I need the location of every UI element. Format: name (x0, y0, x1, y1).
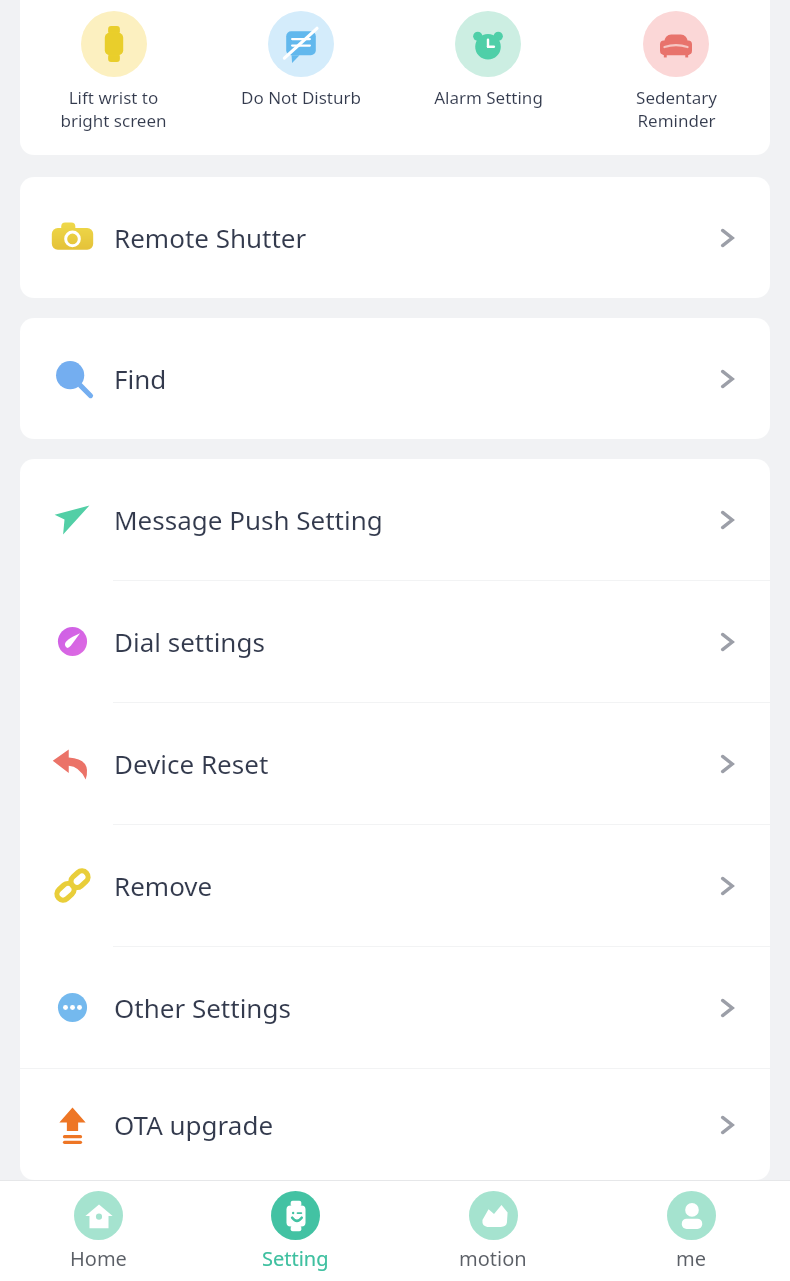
button[interactable]: Other Settings (20, 947, 770, 1068)
button[interactable]: motion (394, 1181, 592, 1281)
button[interactable]: OTA upgrade (20, 1069, 770, 1180)
button[interactable]: Find (20, 318, 770, 439)
staticText: Device Reset (114, 746, 269, 781)
staticText: Dial settings (114, 624, 265, 659)
button[interactable]: Device Reset (20, 703, 770, 824)
button[interactable]: me (592, 1181, 790, 1281)
staticText: OTA upgrade (114, 1107, 274, 1142)
staticText: Lift wrist to bright screen (60, 86, 167, 132)
staticText: me (676, 1245, 706, 1272)
staticText: Other Settings (114, 990, 291, 1025)
button[interactable]: Remote Shutter (20, 177, 770, 298)
staticText: Remote Shutter (114, 220, 307, 255)
button[interactable]: Setting (197, 1181, 394, 1281)
staticText: Message Push Setting (114, 502, 383, 537)
staticText: Remove (114, 868, 213, 903)
button[interactable]: Dial settings (20, 581, 770, 702)
button[interactable]: Alarm Setting (394, 0, 582, 155)
button[interactable]: Remove (20, 825, 770, 946)
staticText: Setting (262, 1245, 329, 1272)
staticText: Sedentary Reminder (636, 86, 717, 132)
button[interactable]: Message Push Setting (20, 459, 770, 580)
staticText: Do Not Disturb (241, 86, 361, 109)
button[interactable]: Do Not Disturb (207, 0, 394, 155)
staticText: Home (70, 1245, 127, 1272)
staticText: motion (459, 1245, 527, 1272)
button[interactable]: Home (0, 1181, 197, 1281)
button[interactable]: Lift wrist to bright screen (20, 0, 207, 155)
button[interactable]: Sedentary Reminder (582, 0, 770, 155)
staticText: Alarm Setting (434, 86, 543, 109)
staticText: Find (114, 361, 167, 396)
